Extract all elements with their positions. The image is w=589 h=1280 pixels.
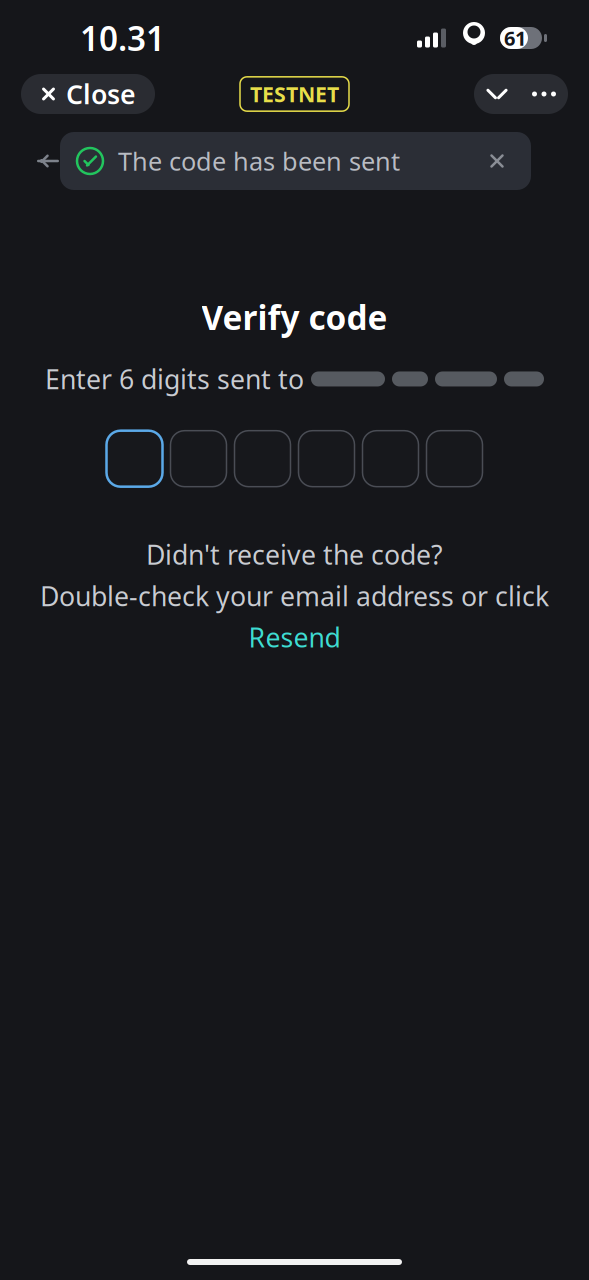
button[interactable]: Digit 4 — [298, 431, 354, 487]
staticText: Didn't receive the code? — [146, 537, 443, 572]
button[interactable]: Digit 1 — [106, 431, 162, 487]
staticText: Resend — [248, 619, 340, 655]
button[interactable]: Digit 5 — [362, 431, 418, 487]
button[interactable]: Digit 6 — [426, 431, 482, 487]
staticText: 61 — [504, 25, 526, 51]
staticText: The code has been sent — [118, 144, 400, 178]
button[interactable]: Resend — [248, 619, 340, 655]
button[interactable]: Close — [21, 74, 155, 114]
button[interactable]: Collapse — [474, 74, 520, 114]
button[interactable]: Digit 3 — [234, 431, 290, 487]
staticText: Verify code — [201, 295, 387, 339]
staticText: 10.31 — [80, 16, 165, 60]
staticText: Double-check your email address or click — [40, 578, 549, 613]
button[interactable]: More options — [520, 74, 568, 114]
staticText: Close — [66, 76, 136, 112]
staticText: TESTNET — [250, 80, 339, 108]
button[interactable]: Dismiss notification — [475, 139, 519, 183]
button[interactable]: Digit 2 — [170, 431, 226, 487]
staticText: Enter 6 digits sent to — [45, 361, 311, 397]
